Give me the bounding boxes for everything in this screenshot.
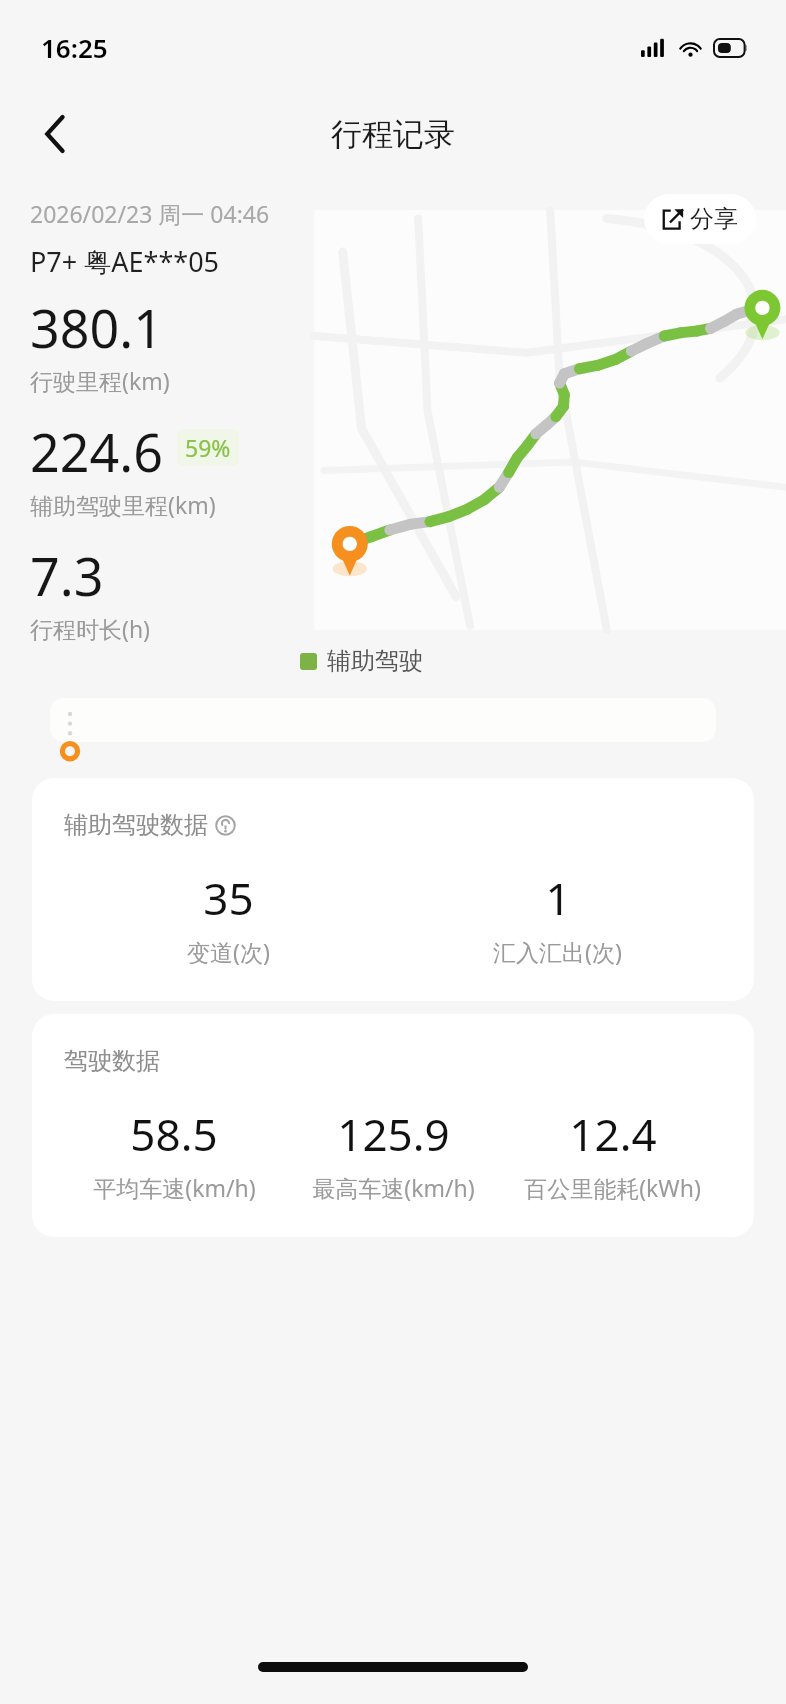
staticText: 16:25	[41, 30, 108, 65]
button[interactable]: Back	[28, 106, 84, 162]
staticText: P7+ 粤AE***05	[30, 243, 220, 280]
staticText: 行驶里程(km)	[30, 365, 170, 396]
staticText: 2026/02/23 周一 04:46	[30, 198, 270, 229]
staticText: 12.4	[569, 1104, 657, 1164]
staticText: 驾驶数据	[64, 1046, 160, 1076]
staticText: 平均车速(km/h)	[93, 1172, 256, 1203]
staticText: 224.6	[30, 416, 163, 487]
staticText: 380.1	[30, 292, 163, 363]
staticText: 变道(次)	[187, 936, 270, 967]
staticText: 辅助驾驶数据	[64, 810, 208, 840]
staticText: 1	[545, 868, 571, 928]
staticText: 58.5	[130, 1104, 218, 1164]
staticText: 7.3	[30, 540, 104, 611]
staticText: 百公里能耗(kWh)	[524, 1172, 701, 1203]
staticText: 辅助驾驶里程(km)	[30, 489, 216, 520]
staticText: 辅助驾驶	[327, 646, 423, 676]
button[interactable]: 驾驶数据	[32, 1014, 754, 1237]
staticText: 最高车速(km/h)	[312, 1172, 475, 1203]
staticText: 分享	[690, 204, 738, 234]
button[interactable]: 辅助驾驶数据	[32, 778, 754, 1001]
staticText: 59%	[185, 432, 231, 463]
staticText: 行程记录	[331, 115, 455, 154]
button[interactable]: 分享	[644, 194, 756, 244]
staticText: 35	[203, 868, 254, 928]
staticText: 行程时长(h)	[30, 613, 151, 644]
staticText: 125.9	[337, 1104, 450, 1164]
staticText: 汇入汇出(次)	[493, 936, 622, 967]
